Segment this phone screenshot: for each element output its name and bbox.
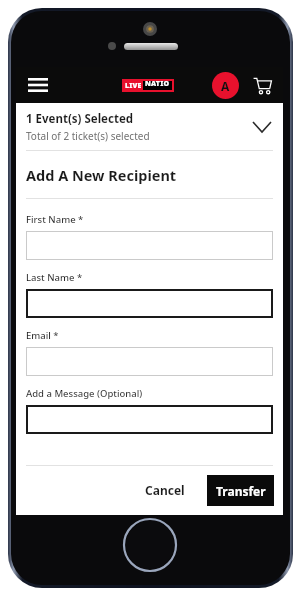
button[interactable]: Live Nation	[122, 79, 174, 92]
staticText: Transfer	[216, 483, 266, 499]
staticText: Last Name *	[26, 271, 83, 284]
button[interactable]	[26, 289, 273, 318]
button[interactable]: Cancel	[133, 474, 197, 506]
button[interactable]	[26, 231, 273, 260]
button[interactable]: 1 Event(s) Selected	[16, 103, 283, 150]
staticText: NATION	[145, 79, 172, 92]
staticText: Add A New Recipient	[26, 165, 177, 185]
staticText: Add a Message (Optional)	[26, 387, 143, 400]
button[interactable]: Cart	[247, 70, 277, 100]
staticText: LIVE	[125, 81, 142, 91]
button[interactable]	[26, 405, 273, 434]
button[interactable]: Menu	[22, 69, 54, 101]
button[interactable]: Account	[212, 72, 239, 99]
staticText: 1 Event(s) Selected	[26, 111, 134, 127]
staticText: First Name *	[26, 213, 84, 226]
staticText: Email *	[26, 329, 59, 342]
staticText: Cancel	[145, 482, 185, 498]
other: Expand	[253, 122, 271, 132]
button[interactable]	[26, 347, 273, 376]
staticText: A	[221, 78, 230, 94]
button[interactable]: Transfer	[207, 475, 274, 506]
staticText: Total of 2 ticket(s) selected	[26, 129, 150, 143]
